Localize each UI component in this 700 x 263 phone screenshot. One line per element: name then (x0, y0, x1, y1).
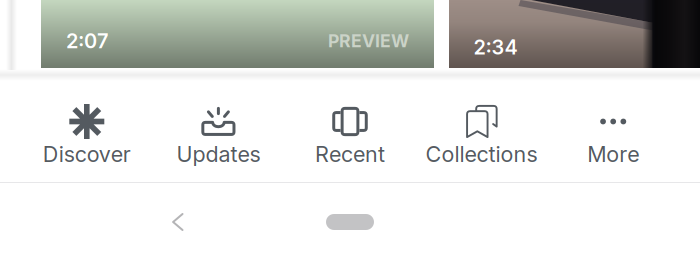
staticText: Recent (315, 141, 385, 167)
button[interactable]: Home (290, 197, 410, 247)
staticText: 2:34 (473, 35, 517, 59)
staticText: More (587, 141, 639, 167)
button[interactable]: More (547, 104, 679, 182)
staticText: Updates (176, 141, 260, 167)
button[interactable]: Updates (153, 104, 284, 182)
staticText: Discover (43, 141, 131, 167)
button[interactable]: Recent (284, 104, 416, 182)
staticText: Collections (426, 141, 538, 167)
staticText: PREVIEW (328, 30, 409, 52)
button[interactable]: Discover (21, 104, 153, 182)
staticText: 2:07 (66, 29, 108, 53)
button[interactable]: Collections (416, 104, 547, 182)
button[interactable]: Back (146, 197, 210, 247)
